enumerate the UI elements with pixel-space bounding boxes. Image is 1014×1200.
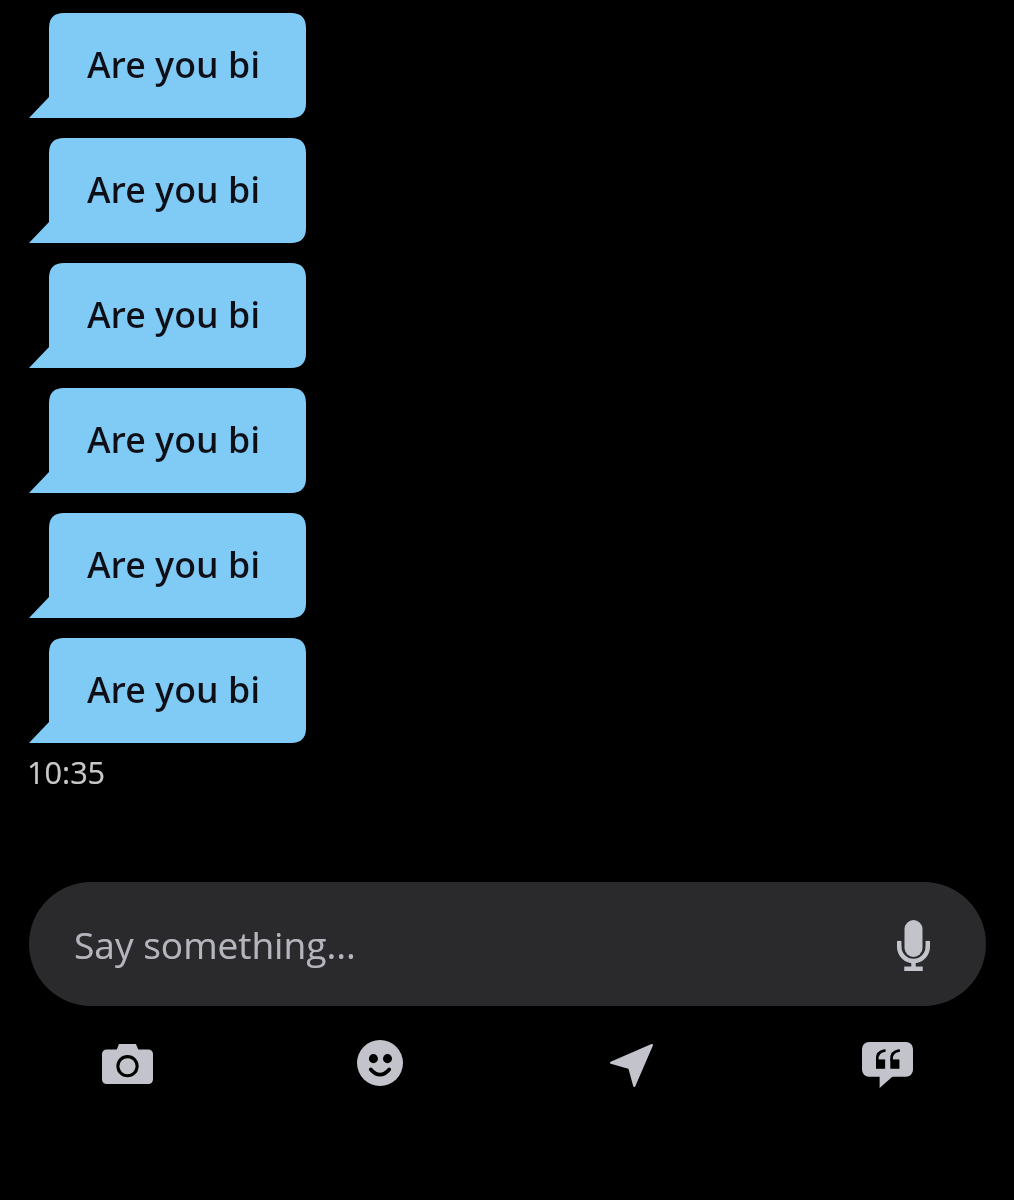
button[interactable]: Are you bi [29,138,306,243]
staticText: Are you bi [87,415,261,464]
button[interactable]: Quick replies [839,1017,935,1113]
button[interactable]: Are you bi [29,13,306,118]
staticText: Are you bi [87,290,261,339]
button[interactable]: Are you bi [29,263,306,368]
button[interactable]: Send location [583,1017,679,1113]
button[interactable]: Stickers [332,1015,428,1111]
button[interactable]: Voice input [875,907,951,983]
button[interactable]: Camera [79,1016,175,1112]
button[interactable]: Are you bi [29,638,306,743]
button[interactable]: Are you bi [29,388,306,493]
staticText: Are you bi [87,540,261,589]
button[interactable]: Say something... [29,882,986,1006]
staticText: Are you bi [87,40,261,89]
staticText: Are you bi [87,665,261,714]
staticText: Say something... [74,919,356,969]
staticText: 10:35 [27,751,106,793]
staticText: Are you bi [87,165,261,214]
button[interactable]: Are you bi [29,513,306,618]
